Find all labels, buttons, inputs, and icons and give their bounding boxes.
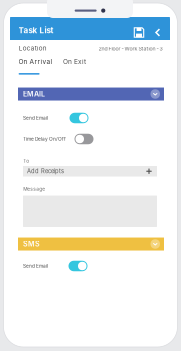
button[interactable]: Back bbox=[150, 25, 166, 40]
button[interactable]: EMAIL bbox=[18, 87, 164, 100]
staticText: On Exit bbox=[63, 57, 86, 65]
staticText: Task List bbox=[19, 25, 54, 35]
button[interactable]: Add Receipts bbox=[23, 166, 157, 176]
staticText: SMS bbox=[23, 240, 40, 248]
staticText: Add Receipts bbox=[27, 168, 64, 175]
staticText: Location bbox=[19, 44, 47, 52]
staticText: Time Delay On/Off bbox=[23, 136, 66, 142]
button[interactable]: Send Email bbox=[18, 112, 164, 124]
staticText: On Arrival bbox=[19, 57, 53, 65]
button[interactable]: Save bbox=[130, 25, 148, 40]
staticText: Send Email bbox=[23, 263, 48, 269]
button[interactable]: SMS bbox=[18, 237, 164, 250]
button[interactable]: On Exit bbox=[63, 57, 89, 65]
button[interactable]: On Arrival bbox=[19, 57, 55, 75]
button[interactable]: Send Email bbox=[18, 260, 164, 272]
staticText: 2nd Floor - Work Station - 3 bbox=[99, 45, 163, 52]
staticText: Message bbox=[23, 186, 45, 192]
button[interactable]: Time Delay On/Off bbox=[18, 133, 164, 145]
staticText: To bbox=[23, 158, 29, 164]
staticText: EMAIL bbox=[23, 90, 45, 98]
staticText: Send Email bbox=[23, 115, 48, 121]
